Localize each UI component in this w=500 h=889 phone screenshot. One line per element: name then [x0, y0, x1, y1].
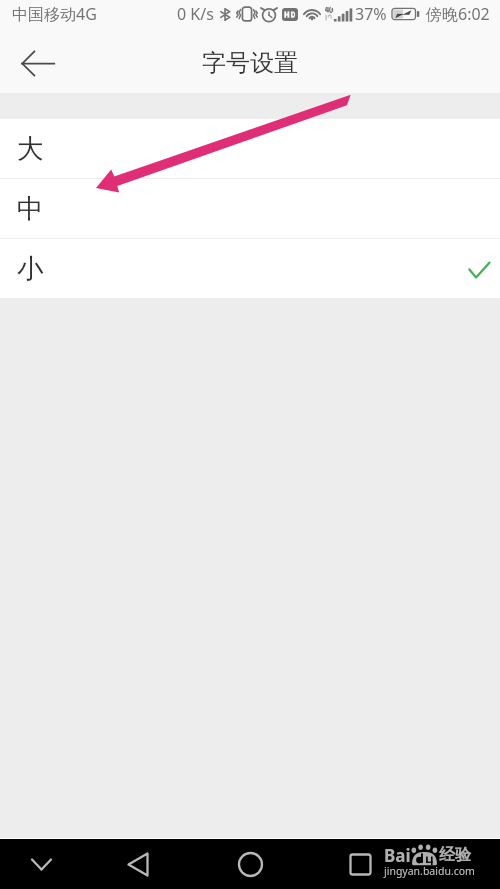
- staticText: Bai: [384, 844, 411, 867]
- button[interactable]: 小: [0, 239, 500, 298]
- staticText: 37%: [355, 3, 387, 25]
- button[interactable]: Recent apps: [337, 841, 384, 888]
- staticText: 经验: [439, 845, 471, 865]
- button[interactable]: Hide keyboard: [18, 841, 65, 888]
- button[interactable]: 中: [0, 179, 500, 238]
- staticText: 大: [17, 132, 44, 165]
- button[interactable]: Home: [227, 841, 274, 888]
- staticText: 0 K/s: [177, 3, 214, 25]
- button[interactable]: 大: [0, 119, 500, 178]
- button[interactable]: Back: [6, 35, 58, 87]
- staticText: jingyan.baidu.com: [384, 864, 475, 878]
- button[interactable]: Back: [115, 841, 162, 888]
- staticText: 小: [17, 252, 44, 285]
- staticText: 中国移动4G: [12, 3, 97, 25]
- staticText: 中: [17, 192, 44, 225]
- staticText: 字号设置: [202, 48, 298, 78]
- staticText: 傍晚6:02: [426, 3, 490, 25]
